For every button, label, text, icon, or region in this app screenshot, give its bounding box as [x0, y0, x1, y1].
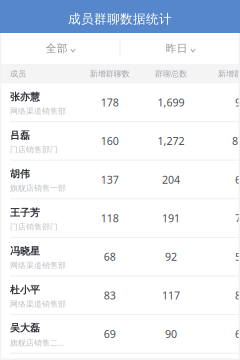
- staticText: 6: [235, 327, 240, 341]
- staticText: 118: [101, 211, 119, 225]
- staticText: 胡伟: [10, 168, 30, 180]
- staticText: 204: [162, 172, 180, 187]
- staticText: 旗舰店销售二...: [10, 337, 64, 348]
- staticText: 117: [162, 288, 180, 302]
- staticText: 新增群人数: [218, 69, 240, 79]
- staticText: 张亦慧: [10, 91, 40, 103]
- staticText: 191: [162, 211, 180, 225]
- button[interactable]: 王子芳: [0, 199, 240, 238]
- staticText: 1,699: [157, 95, 184, 109]
- staticText: 门店销售部门: [10, 222, 58, 232]
- staticText: 成员群聊数据统计: [68, 11, 172, 27]
- staticText: 7: [235, 211, 240, 225]
- staticText: 网络渠道销售部: [10, 106, 66, 116]
- staticText: 68: [104, 249, 116, 264]
- staticText: 冯晓星: [10, 245, 40, 257]
- staticText: 6: [235, 172, 240, 187]
- staticText: 全部: [46, 42, 68, 55]
- staticText: 杜小平: [10, 284, 40, 296]
- button[interactable]: 胡伟: [0, 161, 240, 199]
- staticText: 8: [235, 288, 240, 302]
- button[interactable]: 杜小平: [0, 276, 240, 315]
- button[interactable]: 吕磊: [0, 122, 240, 161]
- staticText: 5: [235, 249, 240, 264]
- staticText: 吴大磊: [10, 322, 40, 334]
- staticText: 137: [101, 172, 119, 187]
- button[interactable]: 张亦慧: [0, 83, 240, 122]
- staticText: 1,272: [157, 134, 184, 148]
- staticText: 87: [232, 134, 240, 148]
- staticText: 群聊总数: [155, 69, 187, 79]
- staticText: 69: [104, 327, 116, 341]
- staticText: 王子芳: [10, 206, 40, 219]
- staticText: 9: [235, 95, 240, 109]
- staticText: 新增群聊数: [90, 69, 130, 79]
- staticText: 178: [101, 95, 119, 109]
- staticText: 网络渠道销售部: [10, 260, 66, 270]
- button[interactable]: 冯晓星: [0, 238, 240, 276]
- button[interactable]: 昨日: [120, 33, 240, 64]
- button[interactable]: 吴大磊: [0, 315, 240, 354]
- staticText: 90: [165, 327, 177, 341]
- staticText: 83: [104, 288, 116, 302]
- staticText: 昨日: [166, 42, 188, 55]
- staticText: 吕磊: [10, 129, 30, 142]
- staticText: 网络渠道销售部: [10, 299, 66, 309]
- staticText: 成员: [10, 69, 26, 79]
- staticText: 92: [165, 249, 177, 264]
- button[interactable]: 全部: [0, 33, 120, 64]
- staticText: 160: [101, 134, 119, 148]
- staticText: 旗舰店销售一部: [10, 183, 66, 193]
- staticText: 门店销售部门: [10, 145, 58, 155]
